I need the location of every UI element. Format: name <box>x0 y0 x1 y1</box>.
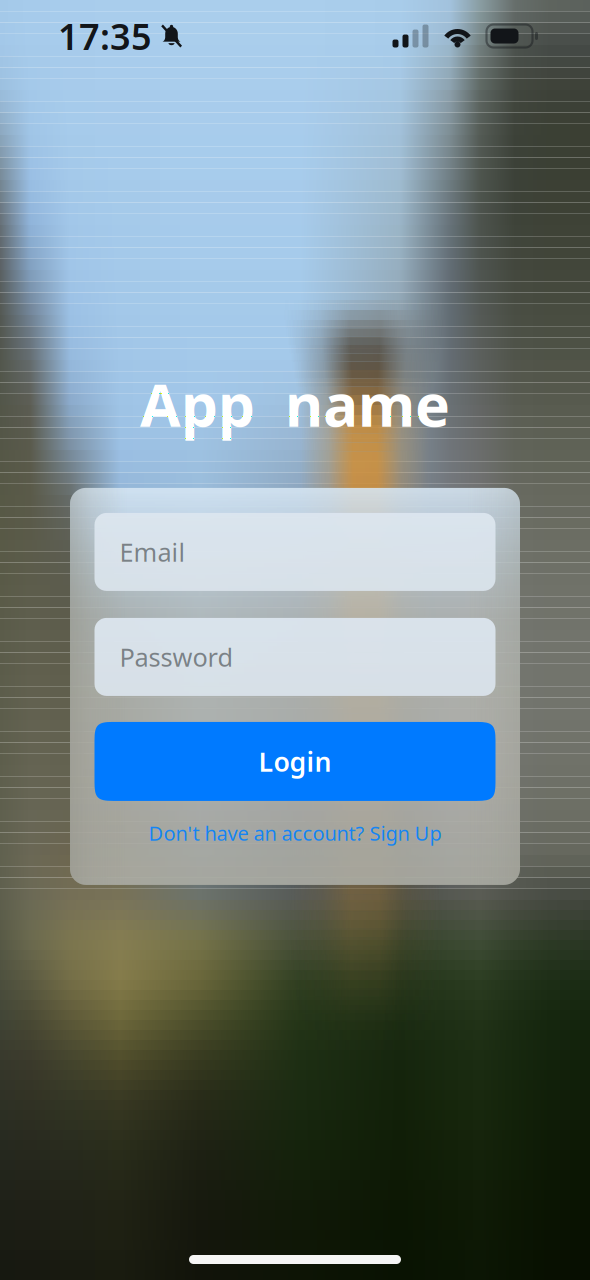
staticText: App name <box>140 365 450 443</box>
staticText: Email <box>119 535 185 569</box>
staticText: Password <box>119 640 233 674</box>
button[interactable]: Email <box>94 513 495 591</box>
staticText: Login <box>258 744 331 779</box>
staticText: Don't have an account? Sign Up <box>148 820 441 846</box>
button[interactable]: Don't have an account? Sign Up <box>75 818 515 848</box>
staticText: 17:35 <box>58 12 152 60</box>
button[interactable]: Login <box>94 722 495 801</box>
button[interactable]: Password <box>94 618 495 696</box>
